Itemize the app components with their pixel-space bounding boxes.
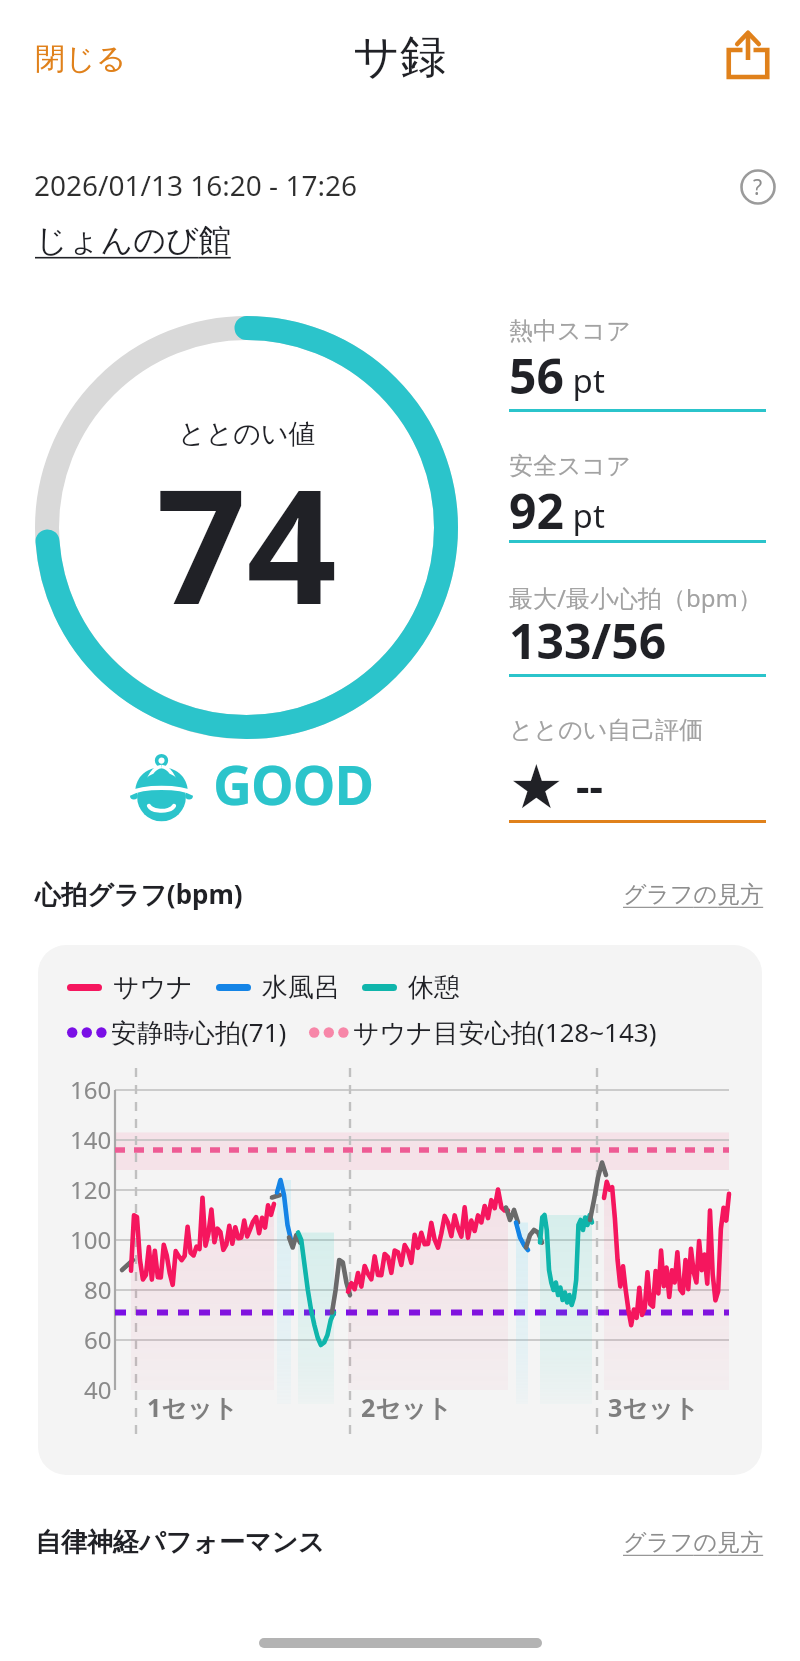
button[interactable]: 安静時心拍(71) [67,1014,287,1050]
staticText: 閉じる [35,40,127,78]
staticText: 水風呂 [262,971,340,1004]
button[interactable]: 安全スコア [509,451,766,544]
button[interactable]: 休憩 [362,971,460,1004]
staticText: pt [564,358,605,403]
button[interactable]: 熱中スコア [509,316,766,413]
button[interactable]: サウナ [67,971,193,1004]
staticText: pt [564,493,605,538]
staticText: 120 [70,1173,112,1206]
staticText: 安静時心拍(71) [111,1014,287,1050]
staticText: グラフの見方 [623,1528,764,1557]
staticText: サ録 [353,28,447,86]
staticText: ととのい値 [178,417,316,451]
button[interactable]: グラフの見方 [623,880,764,909]
staticText: 休憩 [408,971,460,1004]
staticText: 80 [84,1273,112,1306]
staticText: GOOD [213,747,374,821]
button[interactable]: 最大/最小心拍（bpm） [509,581,766,678]
staticText: 140 [70,1123,112,1156]
staticText: サウナ目安心拍(128~143) [353,1014,657,1050]
staticText: ? [753,173,763,202]
staticText: 自律神経パフォーマンス [35,1526,325,1559]
staticText: -- [576,757,603,814]
button[interactable]: 2セット [361,1390,453,1424]
button[interactable]: 1セット [147,1390,239,1424]
staticText: 心拍グラフ(bpm) [35,876,243,912]
staticText: 3セット [608,1390,700,1424]
staticText: 60 [84,1323,112,1356]
staticText: グラフの見方 [623,880,764,909]
button[interactable]: 閉じる [27,34,135,84]
button[interactable]: Share [714,20,782,88]
button[interactable]: ととのい自己評価 [509,715,766,824]
button[interactable]: 3セット [608,1390,700,1424]
staticText: サウナ [113,971,193,1004]
staticText: ととのい自己評価 [509,715,704,745]
staticText: 安全スコア [509,451,631,481]
staticText: 熱中スコア [509,316,631,346]
staticText: 2026/01/13 16:20 - 17:26 [34,166,357,204]
staticText: 92 [509,478,564,543]
staticText: じょんのび館 [35,220,231,260]
staticText: 74 [156,435,337,650]
staticText: 133/56 [509,608,667,673]
staticText: 1セット [147,1390,239,1424]
staticText: 100 [70,1223,112,1256]
staticText: 160 [70,1073,112,1106]
button[interactable]: Help [734,163,782,211]
button[interactable]: じょんのび館 [35,220,231,260]
button[interactable]: グラフの見方 [623,1528,764,1557]
staticText: 56 [509,343,564,408]
button[interactable]: 水風呂 [216,971,340,1004]
staticText: 2セット [361,1390,453,1424]
staticText: 40 [84,1373,112,1406]
staticText: ★ [509,751,564,822]
button[interactable]: サウナ目安心拍(128~143) [309,1014,657,1050]
staticText: 最大/最小心拍（bpm） [509,581,762,614]
